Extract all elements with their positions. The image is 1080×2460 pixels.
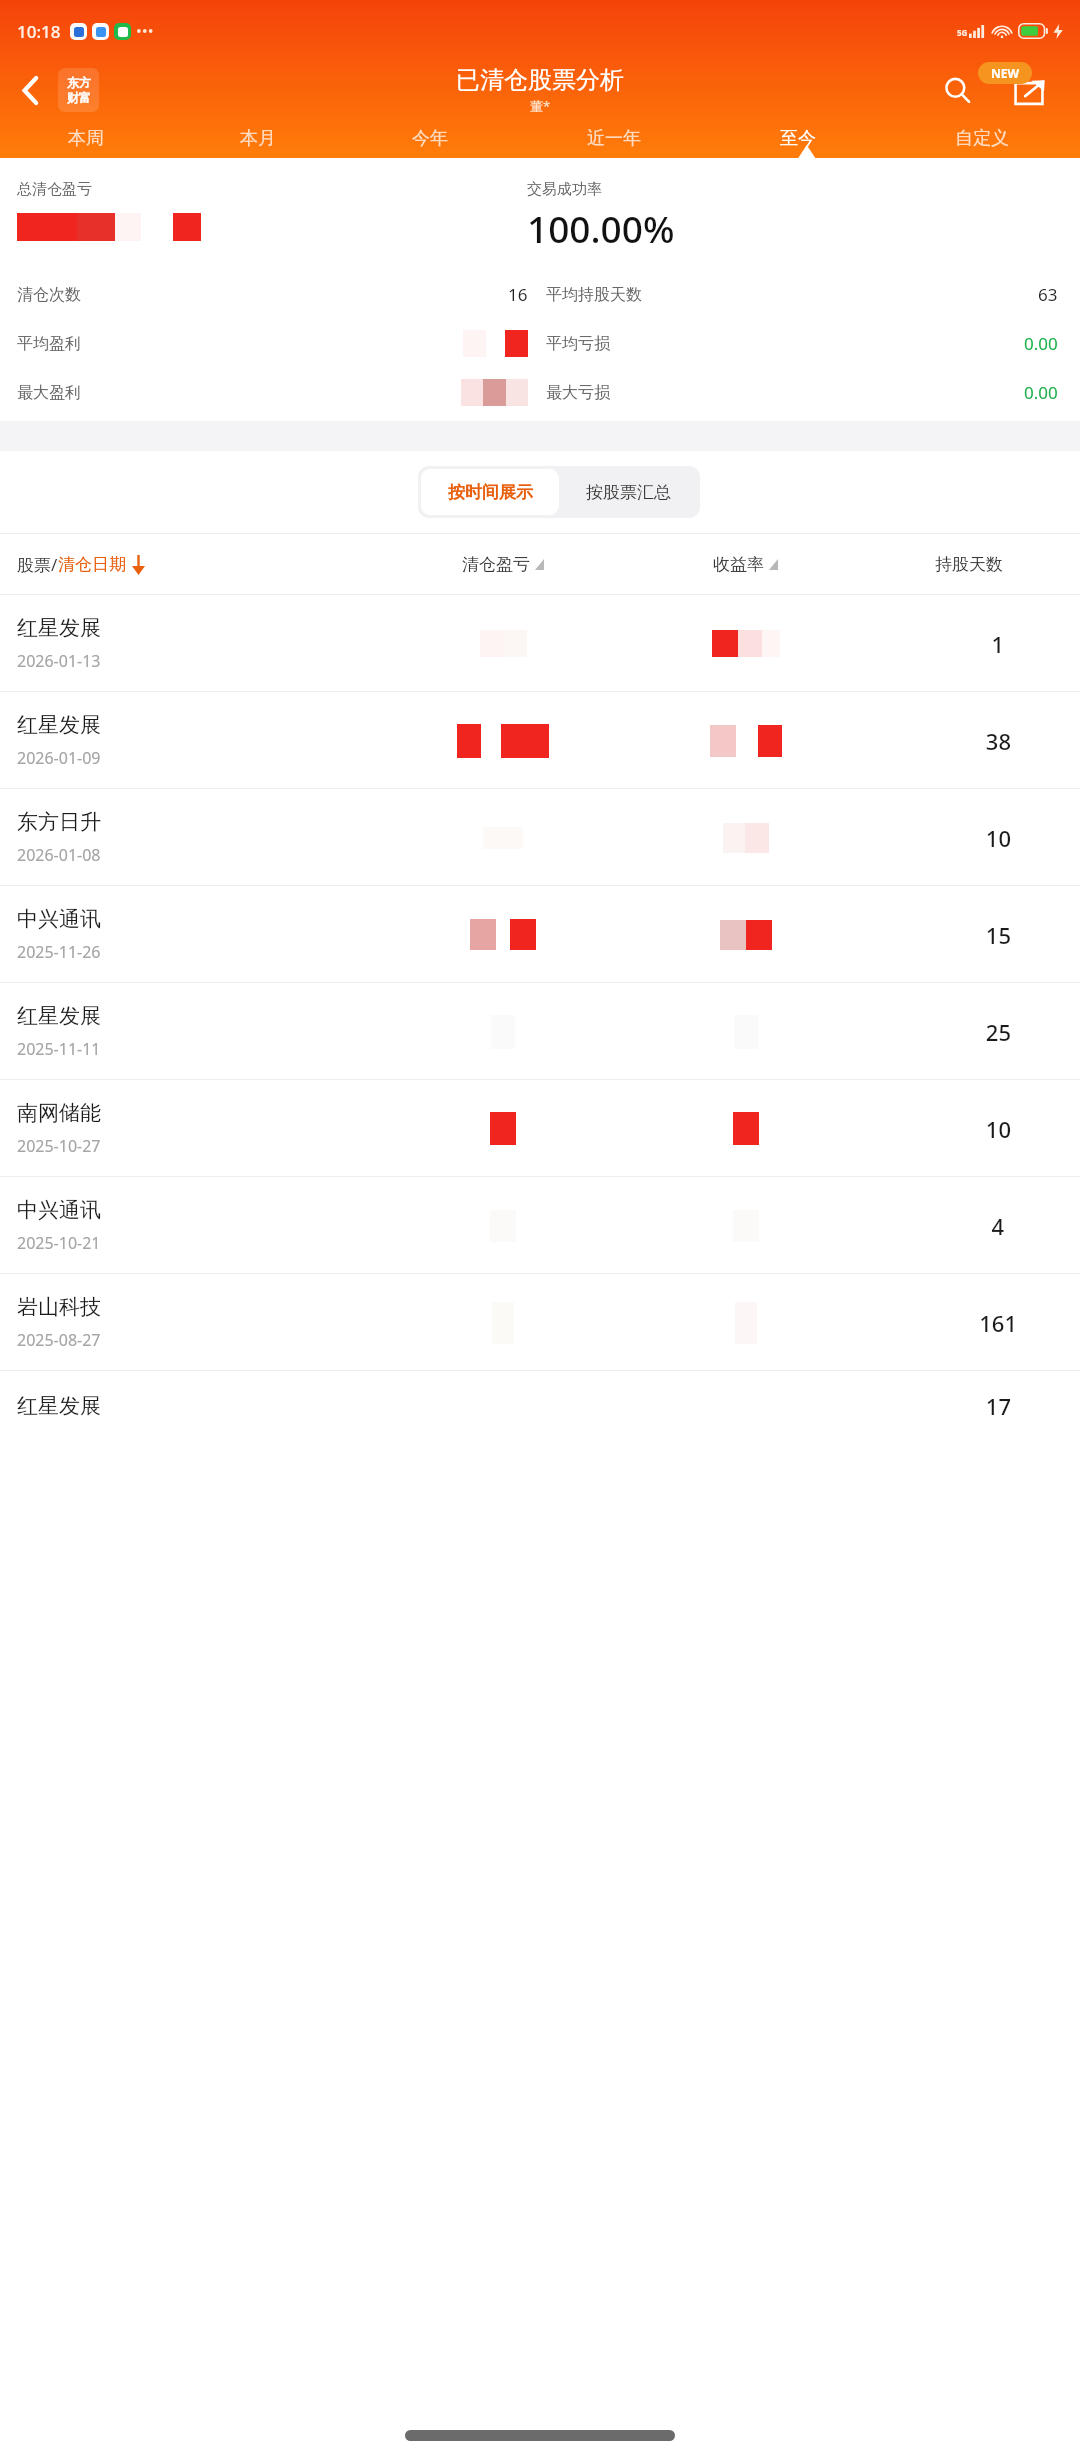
button[interactable]: 本周 — [0, 118, 172, 158]
staticText: 红星发展 — [17, 1393, 101, 1419]
button[interactable]: 红星发展 — [0, 692, 1080, 789]
button[interactable]: 股票/ — [17, 553, 372, 576]
button[interactable]: 东方日升 — [0, 789, 1080, 886]
staticText: 今年 — [412, 127, 448, 150]
staticText: 16 — [508, 283, 528, 306]
staticText: 最大亏损 — [546, 383, 610, 403]
staticText: 持股天数 — [935, 554, 1003, 575]
staticText: 2026-01-13 — [17, 650, 101, 672]
button[interactable]: 按时间展示 — [421, 469, 559, 515]
staticText: 161 — [979, 1308, 1017, 1338]
button[interactable]: 红星发展 — [0, 983, 1080, 1080]
staticText: 平均亏损 — [546, 334, 610, 354]
staticText: 10 — [985, 823, 1011, 853]
button[interactable]: Back — [8, 68, 52, 112]
staticText: 交易成功率 — [527, 180, 602, 199]
button[interactable]: 红星发展 — [0, 1371, 1080, 1441]
staticText: 财富 — [67, 90, 91, 105]
staticText: 17 — [985, 1391, 1011, 1421]
staticText: 2025-10-27 — [17, 1135, 101, 1157]
staticText: 2025-10-21 — [17, 1232, 101, 1254]
staticText: NEW — [991, 65, 1020, 81]
staticText: 63 — [1038, 283, 1058, 306]
staticText: 清仓盈亏 — [462, 554, 530, 575]
staticText: 2025-11-11 — [17, 1038, 101, 1060]
button[interactable]: 东方 — [58, 68, 99, 112]
button[interactable]: 红星发展 — [0, 595, 1080, 692]
staticText: 2026-01-08 — [17, 844, 101, 866]
staticText: 红星发展 — [17, 615, 101, 641]
staticText: 按股票汇总 — [586, 482, 671, 503]
staticText: 平均持股天数 — [546, 285, 642, 305]
staticText: 董* — [530, 97, 551, 115]
staticText: 15 — [985, 920, 1011, 950]
staticText: 东方 — [67, 75, 91, 90]
staticText: 红星发展 — [17, 1003, 101, 1029]
staticText: 总清仓盈亏 — [17, 180, 92, 199]
staticText: 1 — [991, 629, 1004, 659]
staticText: 已清仓股票分析 — [456, 65, 624, 95]
staticText: 平均盈利 — [17, 334, 81, 354]
staticText: 0.00 — [1024, 381, 1058, 404]
button[interactable]: 按股票汇总 — [559, 469, 697, 515]
staticText: 按时间展示 — [448, 482, 533, 503]
staticText: 南网储能 — [17, 1100, 101, 1126]
button[interactable]: 南网储能 — [0, 1080, 1080, 1177]
button[interactable]: 清仓盈亏 — [372, 554, 634, 575]
staticText: 清仓次数 — [17, 285, 81, 305]
staticText: 红星发展 — [17, 712, 101, 738]
staticText: 25 — [985, 1017, 1011, 1047]
staticText: 岩山科技 — [17, 1294, 101, 1320]
button[interactable]: 中兴通讯 — [0, 886, 1080, 983]
staticText: 5G — [957, 27, 968, 38]
button[interactable]: 收益率 — [634, 554, 857, 575]
button[interactable]: 中兴通讯 — [0, 1177, 1080, 1274]
staticText: 2025-11-26 — [17, 941, 101, 963]
staticText: 2026-01-09 — [17, 747, 101, 769]
staticText: 清仓日期 — [58, 554, 126, 575]
staticText: 0.00 — [1024, 332, 1058, 355]
staticText: 本月 — [240, 127, 276, 150]
staticText: 最大盈利 — [17, 383, 81, 403]
staticText: 38 — [985, 726, 1011, 756]
button[interactable]: 岩山科技 — [0, 1274, 1080, 1371]
button[interactable]: Share — [1004, 65, 1054, 115]
staticText: 100.00% — [527, 203, 675, 253]
staticText: 东方日升 — [17, 809, 101, 835]
button[interactable]: 本月 — [172, 118, 344, 158]
button[interactable]: 自定义 — [883, 118, 1080, 158]
staticText: 中兴通讯 — [17, 906, 101, 932]
staticText: 10:18 — [17, 20, 61, 43]
staticText: 收益率 — [713, 554, 764, 575]
staticText: 自定义 — [955, 127, 1009, 150]
staticText: 近一年 — [587, 127, 641, 150]
staticText: 中兴通讯 — [17, 1197, 101, 1223]
button[interactable]: Search — [934, 67, 980, 113]
staticText: 股票/ — [17, 553, 58, 576]
staticText: 至今 — [780, 127, 816, 150]
button[interactable]: 至今 — [712, 118, 883, 158]
button[interactable]: 近一年 — [515, 118, 712, 158]
button[interactable]: 今年 — [344, 118, 515, 158]
staticText: 2025-08-27 — [17, 1329, 101, 1351]
staticText: 4 — [991, 1211, 1004, 1241]
staticText: 10 — [985, 1114, 1011, 1144]
staticText: 本周 — [68, 127, 104, 150]
